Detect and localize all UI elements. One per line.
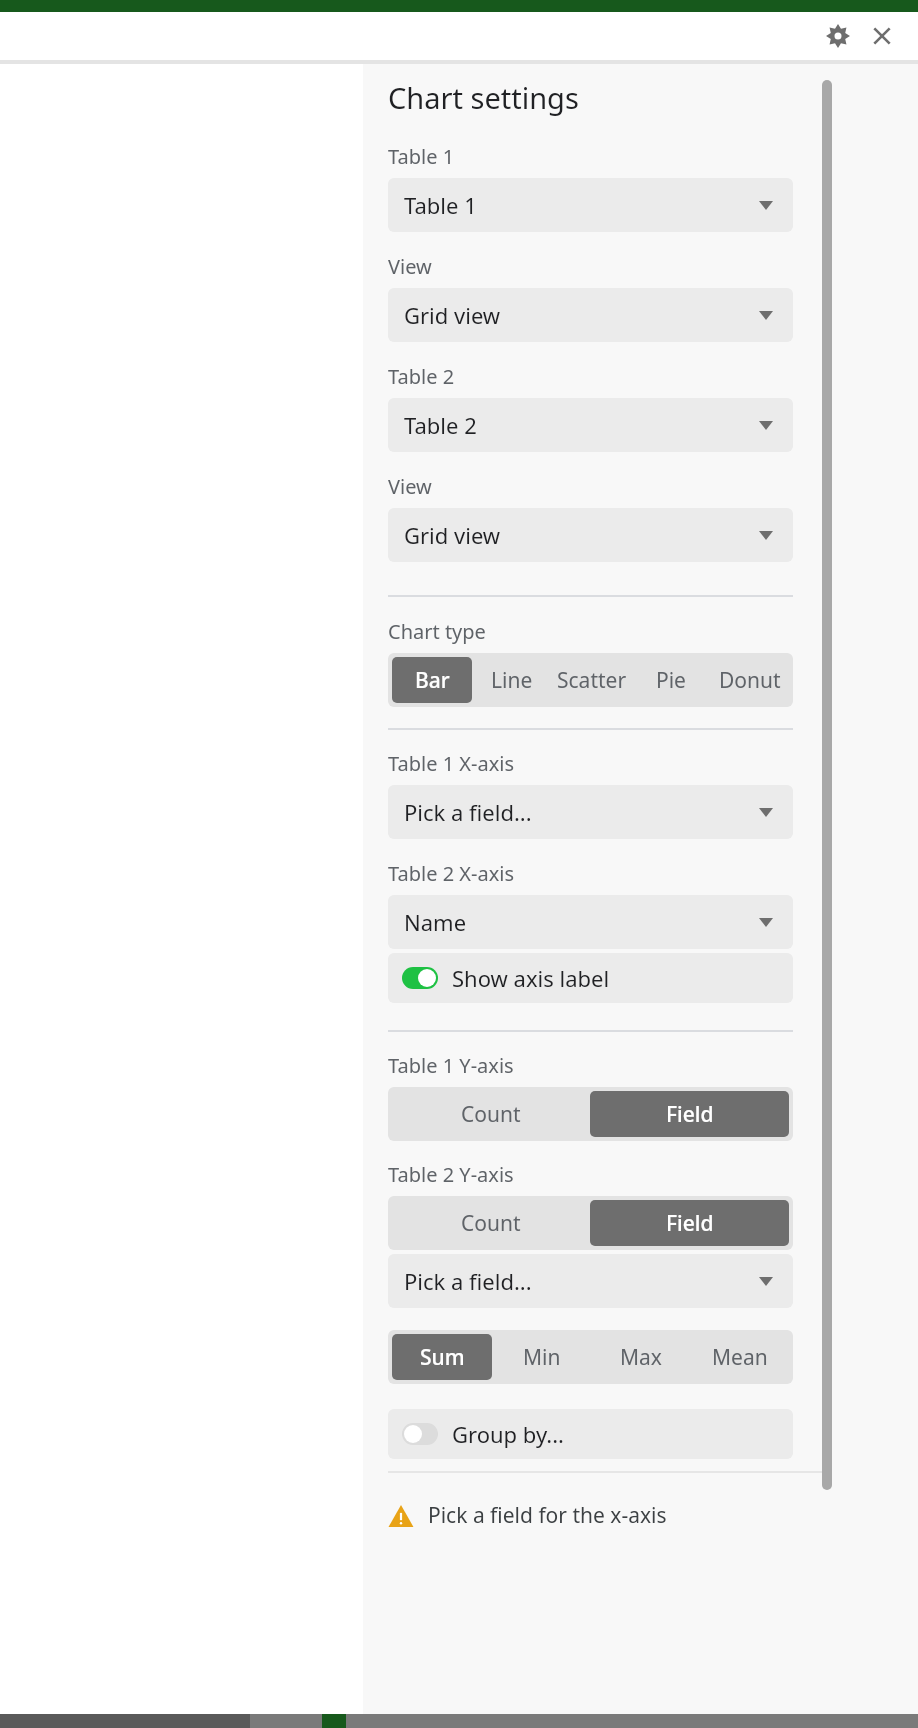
button[interactable]: Scatter (552, 657, 631, 703)
staticText: Line (491, 666, 533, 695)
button[interactable]: Grid view (388, 508, 793, 562)
staticText: Field (666, 1100, 714, 1129)
staticText: Min (523, 1343, 561, 1372)
staticText: Bar (415, 666, 450, 695)
button[interactable]: Min (492, 1334, 591, 1380)
staticText: Table 1 (388, 143, 455, 170)
staticText: Pick a field... (404, 797, 532, 827)
button[interactable]: Close (860, 14, 904, 58)
staticText: Group by... (452, 1419, 564, 1449)
button[interactable]: Bar (392, 657, 472, 703)
staticText: Table 2 X-axis (388, 860, 515, 887)
button[interactable]: Max (591, 1334, 690, 1380)
staticText: Pick a field... (404, 1266, 532, 1296)
button[interactable]: Count (392, 1091, 590, 1137)
staticText: Table 2 Y-axis (388, 1161, 514, 1188)
staticText: Table 1 (404, 190, 477, 220)
staticText: Show axis label (452, 963, 610, 993)
staticText: Count (461, 1100, 521, 1129)
staticText: Table 2 (388, 363, 455, 390)
staticText: Name (404, 907, 467, 937)
button[interactable]: Sum (392, 1334, 492, 1380)
staticText: Scatter (557, 666, 627, 695)
staticText: View (388, 473, 432, 500)
staticText: View (388, 253, 432, 280)
button[interactable]: Count (392, 1200, 590, 1246)
staticText: Max (620, 1343, 662, 1372)
button[interactable]: Show axis label (388, 953, 793, 1003)
staticText: Donut (719, 666, 781, 695)
staticText: Table 1 Y-axis (388, 1052, 514, 1079)
button[interactable]: Line (472, 657, 552, 703)
button[interactable]: Mean (690, 1334, 789, 1380)
button[interactable]: Group by... (388, 1409, 793, 1459)
button[interactable]: Pick a field... (388, 785, 793, 839)
staticText: Count (461, 1209, 521, 1238)
staticText: Grid view (404, 300, 501, 330)
staticText: Mean (712, 1343, 768, 1372)
button[interactable]: Donut (710, 657, 789, 703)
staticText: Pick a field for the x-axis (428, 1501, 667, 1530)
staticText: Chart type (388, 618, 486, 645)
staticText: Grid view (404, 520, 501, 550)
button[interactable]: Field (590, 1091, 789, 1137)
button[interactable]: Name (388, 895, 793, 949)
button[interactable]: Grid view (388, 288, 793, 342)
button[interactable]: Table 1 (388, 178, 793, 232)
staticText: Table 1 X-axis (388, 750, 515, 777)
staticText: Chart settings (388, 78, 579, 117)
button[interactable]: Pie (631, 657, 710, 703)
button[interactable]: Table 2 (388, 398, 793, 452)
button[interactable]: Pick a field... (388, 1254, 793, 1308)
button[interactable]: Field (590, 1200, 789, 1246)
staticText: Field (666, 1209, 714, 1238)
staticText: Pie (656, 666, 686, 695)
staticText: Table 2 (404, 410, 477, 440)
staticText: Sum (420, 1343, 465, 1372)
button[interactable]: Settings (816, 14, 860, 58)
